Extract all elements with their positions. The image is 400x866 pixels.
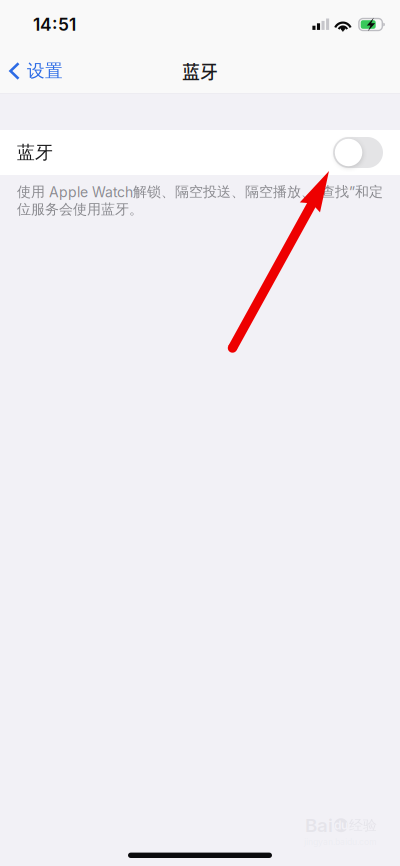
button[interactable]: 设置 <box>0 49 73 93</box>
staticText: 设置 <box>27 60 63 82</box>
staticText: du <box>334 818 348 832</box>
button[interactable]: 蓝牙 <box>0 130 400 175</box>
staticText: 使用 Apple Watch解锁、隔空投送、隔空播放、“查找”和定位服务会使用蓝… <box>17 183 383 218</box>
staticText: 蓝牙 <box>182 58 218 84</box>
staticText: 蓝牙 <box>17 141 53 164</box>
staticText: 14:51 <box>33 14 76 35</box>
staticText: 经验 <box>349 816 377 834</box>
staticText: Bai <box>305 814 333 836</box>
